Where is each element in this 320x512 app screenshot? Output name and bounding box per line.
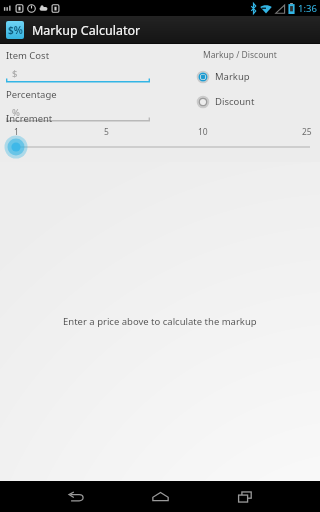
staticText: 5 xyxy=(104,126,109,137)
button[interactable]: Markup xyxy=(197,70,283,83)
staticText: 25 xyxy=(302,126,312,137)
staticText: $% xyxy=(8,23,23,37)
staticText: 1 xyxy=(14,126,19,137)
staticText: Markup / Discount xyxy=(203,49,277,61)
staticText: Markup Calculator xyxy=(32,22,141,39)
button[interactable]: $ xyxy=(6,64,150,83)
staticText: Enter a price above to calculate the mar… xyxy=(63,315,257,328)
staticText: 10 xyxy=(198,126,208,137)
button[interactable]: Recent apps xyxy=(228,481,262,512)
button[interactable]: Markup Calculator xyxy=(6,21,141,39)
staticText: 1:36 xyxy=(298,2,317,15)
button[interactable]: Back xyxy=(58,481,92,512)
staticText: % xyxy=(12,106,20,119)
button[interactable]: Discount xyxy=(197,95,283,108)
button[interactable]: Home xyxy=(143,481,177,512)
staticText: Markup xyxy=(215,70,250,83)
staticText: Percentage xyxy=(6,88,57,101)
staticText: Increment xyxy=(6,112,53,125)
staticText: Discount xyxy=(215,95,255,108)
staticText: $ xyxy=(12,67,18,80)
button[interactable]: Increment slider xyxy=(0,138,320,156)
button[interactable]: % xyxy=(6,103,150,122)
staticText: Item Cost xyxy=(6,49,50,62)
